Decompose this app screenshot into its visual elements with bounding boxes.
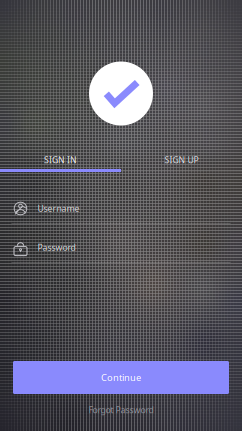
button[interactable]: Password [11,238,230,263]
staticText: SIGN IN [44,154,77,166]
button[interactable]: Username [11,199,230,224]
staticText: Continue [101,371,141,384]
staticText: Forgot Password [88,404,153,416]
button[interactable]: Continue [13,361,229,394]
staticText: SIGN UP [164,154,198,166]
button[interactable]: SIGN UP [121,153,242,172]
staticText: Password [37,242,75,253]
button[interactable]: Forgot Password [66,399,176,421]
button[interactable]: SIGN IN [0,153,121,172]
staticText: Username [37,203,79,214]
